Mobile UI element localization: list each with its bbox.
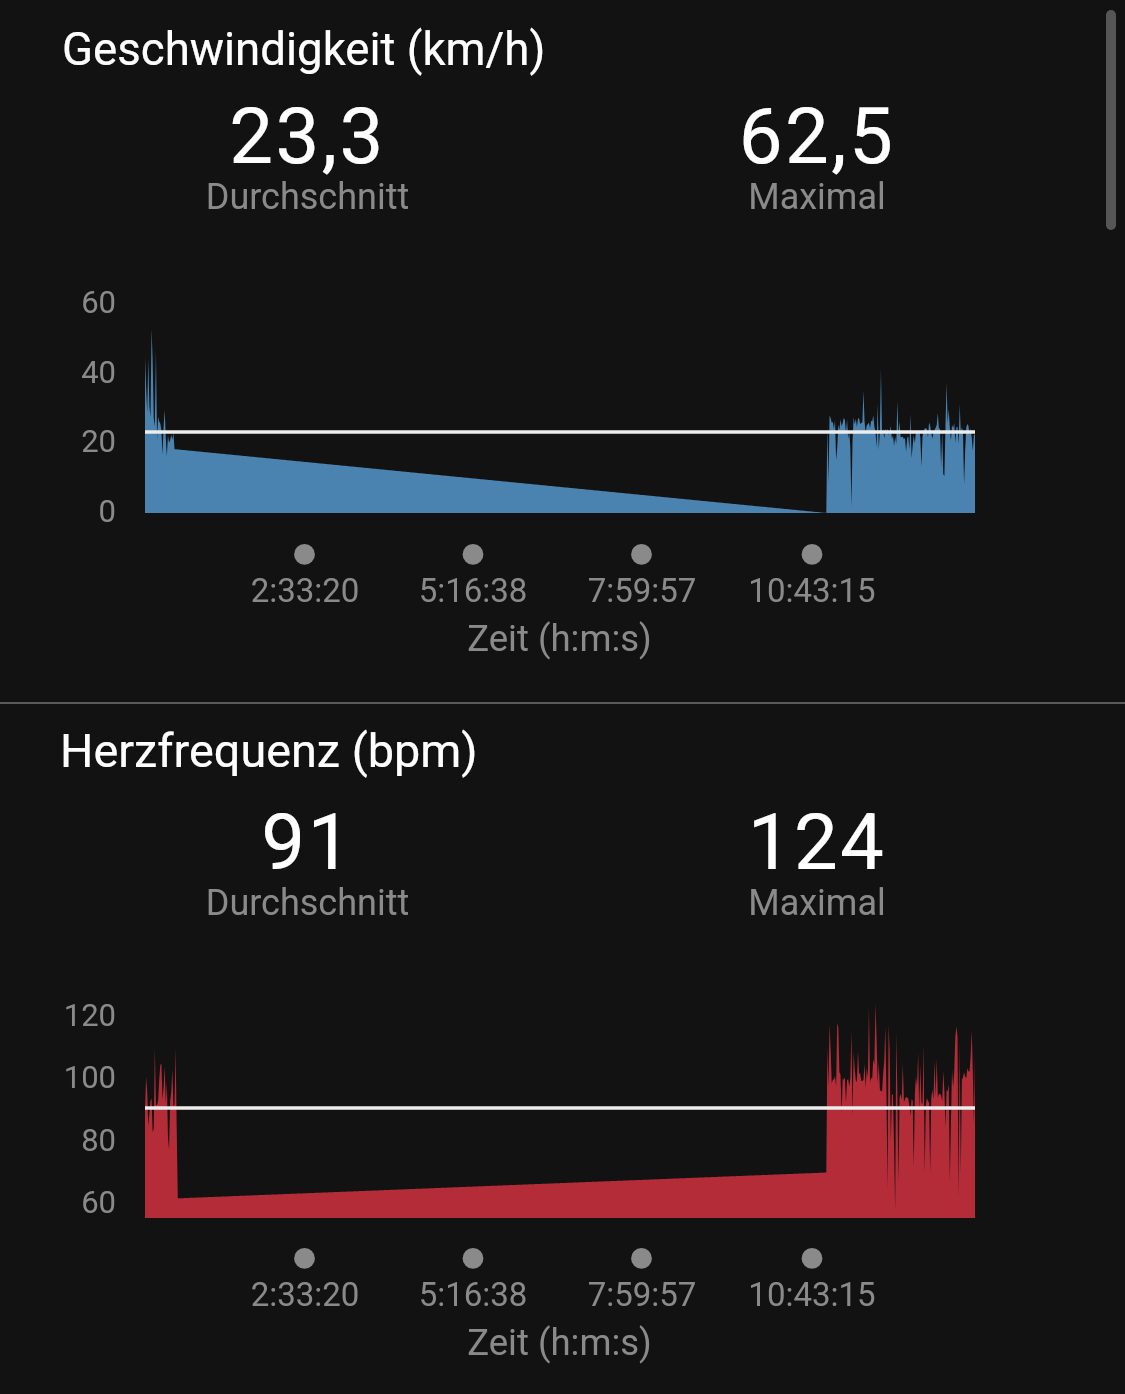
staticText: 60	[0, 284, 116, 320]
staticText: 40	[0, 354, 116, 390]
staticText: Durchschnitt	[53, 176, 562, 218]
button[interactable]: 23,3	[53, 91, 562, 182]
button[interactable]: 62,5	[562, 91, 1072, 182]
staticText: 5:16:38	[363, 571, 583, 610]
staticText: 10:43:15	[702, 1275, 922, 1314]
staticText: 20	[0, 423, 116, 459]
staticText: Zeit (h:m:s)	[0, 1321, 1122, 1364]
staticText: Maximal	[562, 882, 1072, 924]
staticText: 7:59:57	[532, 1275, 752, 1314]
staticText: 124	[562, 797, 1072, 888]
button[interactable]: Maximal	[562, 882, 1072, 924]
staticText: Geschwindigkeit (km/h)	[62, 23, 546, 76]
staticText: Durchschnitt	[53, 882, 562, 924]
button[interactable]: Durchschnitt	[53, 882, 562, 924]
staticText: Herzfrequenz (bpm)	[60, 724, 478, 779]
staticText: 91	[53, 797, 562, 888]
button[interactable]: 91	[53, 797, 562, 888]
button[interactable]: Durchschnitt	[53, 176, 562, 218]
staticText: 100	[0, 1059, 116, 1095]
staticText: 2:33:20	[195, 571, 415, 610]
button[interactable]: Herzfrequenz (bpm)	[0, 704, 1125, 1394]
button[interactable]: Maximal	[562, 176, 1072, 218]
staticText: 23,3	[53, 91, 562, 182]
staticText: 62,5	[562, 91, 1072, 182]
button[interactable]: 124	[562, 797, 1072, 888]
staticText: 120	[0, 997, 116, 1033]
staticText: Zeit (h:m:s)	[0, 617, 1122, 660]
staticText: 0	[0, 493, 116, 529]
button[interactable]: Geschwindigkeit (km/h)	[0, 0, 1125, 702]
staticText: 5:16:38	[363, 1275, 583, 1314]
staticText: 10:43:15	[702, 571, 922, 610]
staticText: 7:59:57	[532, 571, 752, 610]
staticText: Maximal	[562, 176, 1072, 218]
staticText: 60	[0, 1184, 116, 1220]
staticText: 80	[0, 1122, 116, 1158]
staticText: 2:33:20	[195, 1275, 415, 1314]
